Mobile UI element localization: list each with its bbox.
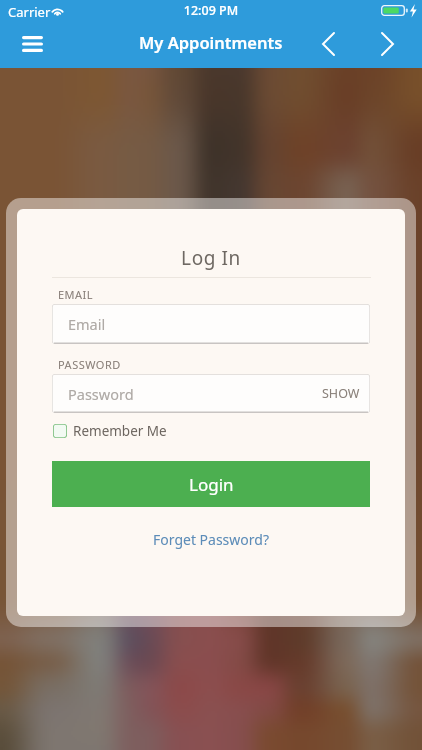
staticText: Password <box>68 384 134 404</box>
staticText: EMAIL <box>58 287 94 302</box>
staticText: PASSWORD <box>58 357 121 372</box>
button[interactable]: Previous <box>309 20 347 68</box>
staticText: Email <box>68 314 106 334</box>
staticText: 12:09 PM <box>0 2 422 19</box>
button[interactable]: Menu <box>9 20 55 68</box>
button[interactable]: Email <box>52 304 370 344</box>
button[interactable]: Remember Me <box>53 422 167 440</box>
staticText: Carrier <box>8 3 51 21</box>
staticText: Log In <box>17 245 405 271</box>
staticText: Login <box>189 473 234 496</box>
button[interactable]: Login <box>52 461 370 507</box>
button[interactable]: Password <box>52 374 370 413</box>
button[interactable]: Next <box>368 20 406 68</box>
button[interactable]: Forget Password? <box>153 530 269 549</box>
staticText: SHOW <box>322 385 360 402</box>
staticText: My Appointments <box>139 31 283 53</box>
staticText: Remember Me <box>73 422 167 440</box>
